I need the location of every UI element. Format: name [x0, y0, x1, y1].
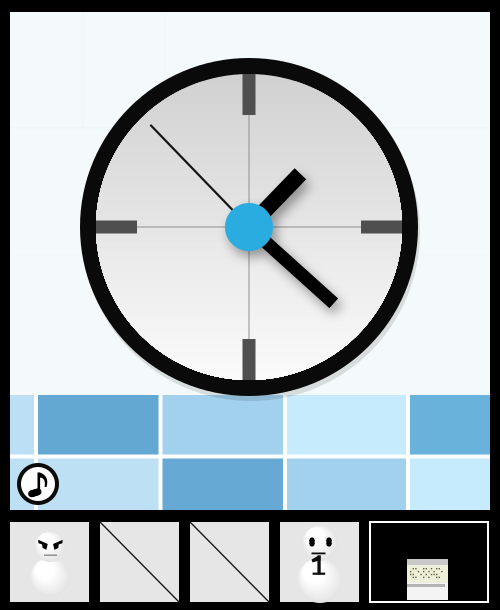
button[interactable]: Empty slot [100, 522, 179, 602]
button[interactable]: Snowman clip 1 [280, 522, 359, 602]
button[interactable]: Empty slot [190, 522, 269, 602]
button[interactable]: Music [17, 463, 59, 505]
button[interactable]: Angry snowman clip [10, 522, 89, 602]
button[interactable]: Screen recording [370, 522, 488, 602]
